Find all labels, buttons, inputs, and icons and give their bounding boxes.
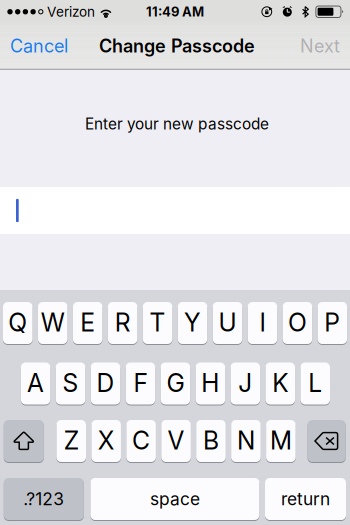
staticText: O — [288, 308, 307, 337]
staticText: S — [62, 368, 78, 398]
staticText: F — [133, 368, 147, 398]
button[interactable]: X — [91, 419, 121, 463]
staticText: Q — [8, 308, 27, 337]
button[interactable]: P — [318, 301, 347, 345]
button[interactable]: F — [126, 361, 155, 405]
button[interactable]: space — [90, 477, 259, 521]
button[interactable]: C — [126, 419, 156, 463]
staticText: space — [150, 488, 200, 509]
button[interactable]: G — [161, 361, 190, 405]
staticText: G — [166, 368, 184, 398]
button[interactable]: .?123 — [4, 477, 84, 521]
button[interactable]: Shift — [4, 419, 44, 463]
staticText: K — [272, 368, 288, 398]
staticText: J — [238, 368, 252, 398]
staticText: Next — [300, 35, 340, 57]
staticText: Cancel — [10, 35, 68, 57]
staticText: L — [308, 368, 322, 398]
staticText: X — [98, 426, 115, 455]
staticText: P — [324, 308, 340, 337]
button[interactable]: H — [196, 361, 225, 405]
staticText: I — [259, 308, 265, 337]
button[interactable]: B — [196, 419, 226, 463]
button[interactable]: T — [143, 301, 172, 345]
button[interactable]: E — [73, 301, 102, 345]
staticText: N — [237, 426, 255, 455]
staticText: H — [201, 368, 219, 398]
staticText: A — [27, 368, 44, 398]
staticText: M — [270, 426, 292, 455]
staticText: Verizon — [47, 3, 95, 20]
button[interactable]: V — [161, 419, 191, 463]
staticText: R — [115, 308, 131, 337]
button[interactable]: Y — [178, 301, 207, 345]
button[interactable]: R — [108, 301, 137, 345]
button[interactable]: M — [266, 419, 296, 463]
button[interactable]: L — [300, 361, 330, 405]
staticText: W — [41, 308, 65, 337]
button[interactable]: Cancel — [0, 24, 80, 68]
staticText: Y — [184, 308, 201, 337]
staticText: B — [203, 426, 219, 455]
button[interactable]: Next — [288, 24, 350, 68]
button[interactable]: K — [265, 361, 295, 405]
button[interactable]: Delete — [308, 419, 346, 463]
button[interactable]: U — [213, 301, 242, 345]
staticText: Enter your new passcode — [85, 115, 269, 133]
staticText: U — [218, 308, 236, 337]
button[interactable]: S — [56, 361, 85, 405]
button[interactable]: J — [230, 361, 260, 405]
button[interactable]: Z — [56, 419, 86, 463]
staticText: Change Passcode — [99, 35, 255, 57]
button[interactable]: W — [38, 301, 68, 345]
staticText: .?123 — [23, 488, 64, 509]
staticText: T — [150, 308, 166, 337]
button[interactable]: A — [21, 361, 50, 405]
button[interactable]: I — [248, 301, 277, 345]
button[interactable]: return — [265, 477, 346, 521]
staticText: V — [168, 426, 185, 455]
staticText: 11:49 AM — [146, 4, 204, 20]
button[interactable]: Q — [3, 301, 33, 345]
button[interactable]: N — [231, 419, 261, 463]
staticText: Z — [64, 426, 79, 455]
button[interactable]: O — [283, 301, 312, 345]
staticText: E — [80, 308, 95, 337]
staticText: return — [281, 488, 330, 509]
button[interactable]: D — [91, 361, 120, 405]
staticText: C — [132, 426, 150, 455]
staticText: D — [96, 368, 114, 398]
